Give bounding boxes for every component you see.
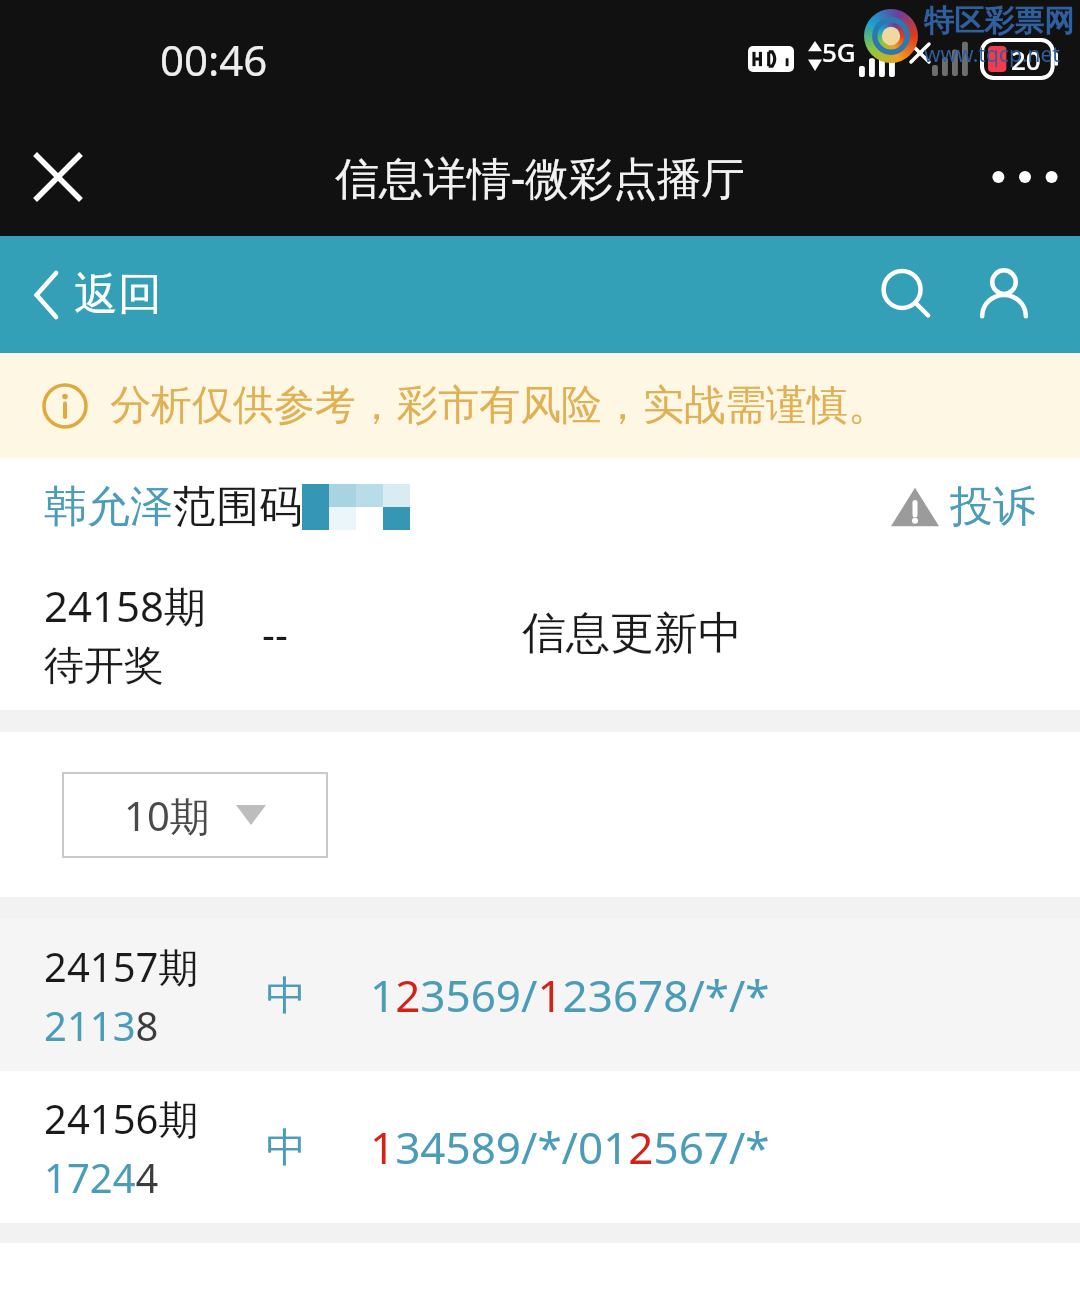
button[interactable]: Search [860,249,952,341]
staticText: 特区彩票网 [924,2,1074,40]
staticText: 24157期 [44,939,199,994]
staticText: -- [262,606,288,660]
staticText: 信息更新中 [522,606,742,661]
staticText: 韩允泽范围码 [44,480,302,534]
staticText: 20 [1011,42,1041,77]
button[interactable]: 投诉 [890,480,1036,534]
staticText: 信息详情-微彩点播厅 [335,147,746,207]
button[interactable]: 24156期 [0,1071,1080,1223]
staticText: 5G [822,34,856,69]
staticText: 待开奖 [44,640,164,690]
staticText: 返回 [74,267,162,322]
button[interactable]: More options [970,129,1080,225]
button[interactable]: 10期 [62,772,328,858]
staticText: 00:46 [160,31,268,88]
button[interactable]: 返回 [34,267,162,322]
staticText: 21138 [44,998,159,1052]
staticText: 中 [266,1122,306,1172]
button[interactable]: Account [958,249,1050,341]
staticText: 134589/*/012567/* [370,1117,770,1177]
staticText: www.tqcp.net [924,40,1060,69]
button[interactable]: 24157期 [0,919,1080,1071]
staticText: 分析仅供参考，彩市有风险，实战需谨慎。 [110,380,889,432]
staticText: 中 [266,970,306,1020]
staticText: 123569/123678/*/* [370,965,770,1025]
staticText: 投诉 [950,480,1036,534]
staticText: 10期 [124,788,210,843]
staticText: 24158期 [44,577,207,634]
staticText: 17244 [44,1150,159,1204]
staticText: 24156期 [44,1091,199,1146]
button[interactable]: Close [10,129,106,225]
